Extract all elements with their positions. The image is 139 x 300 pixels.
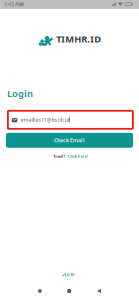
staticText: emailtest1@bsofi.uk [21,116,71,123]
staticText: TIMHR.ID [56,33,101,45]
button[interactable]: Home [57,283,81,299]
staticText: Login [7,87,33,100]
button[interactable]: Check Email [6,133,133,148]
button[interactable]: Click here! [68,153,88,159]
staticText: Tried? [53,153,65,159]
staticText: Click here! [68,153,88,159]
button[interactable]: Back [87,283,111,299]
staticText: v1.0.15 [62,272,74,277]
button[interactable]: Recents [28,283,52,299]
staticText: Check Email [54,137,85,144]
staticText: 9:43 AM [4,1,23,8]
